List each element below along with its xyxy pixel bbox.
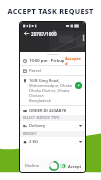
staticText: 16/B Ging Road, xyxy=(29,78,60,83)
button[interactable]: 16/B Ging Road, xyxy=(20,76,85,105)
staticText: Parcel xyxy=(29,68,41,74)
staticText: Decline xyxy=(25,163,40,168)
staticText: ACCEPT TASK REQUEST xyxy=(7,6,94,16)
staticText: 20787/1000 xyxy=(31,31,57,37)
button[interactable]: Back xyxy=(23,30,30,37)
staticText: Delivery xyxy=(29,123,46,129)
button[interactable]: 2 KG xyxy=(20,137,85,147)
staticText: ORDER ID #23AB78 xyxy=(29,108,66,113)
button[interactable]: 10:00 pm · Pickup xyxy=(20,56,85,65)
staticText: Accept xyxy=(68,164,82,169)
staticText: 2 KG xyxy=(29,139,39,145)
button[interactable]: Delivery xyxy=(20,121,85,131)
button[interactable]: Navigate xyxy=(75,82,82,89)
staticText: Accepted xyxy=(65,56,82,65)
button[interactable]: Accept xyxy=(49,161,82,171)
staticText: Bangladesh xyxy=(29,98,52,103)
staticText: Dhaka District, Dhaka Division xyxy=(29,88,74,98)
staticText: SELECT SERVICE TYPE xyxy=(23,116,60,120)
staticText: 10:00 pm · Pickup xyxy=(29,58,65,64)
staticText: Mohammadpur, Dhaka xyxy=(29,83,73,88)
button[interactable]: Parcel xyxy=(20,66,85,75)
staticText: WEIGHT xyxy=(23,132,37,136)
button[interactable]: ORDER ID #23AB78 xyxy=(20,106,85,115)
button[interactable]: Decline xyxy=(23,161,42,170)
